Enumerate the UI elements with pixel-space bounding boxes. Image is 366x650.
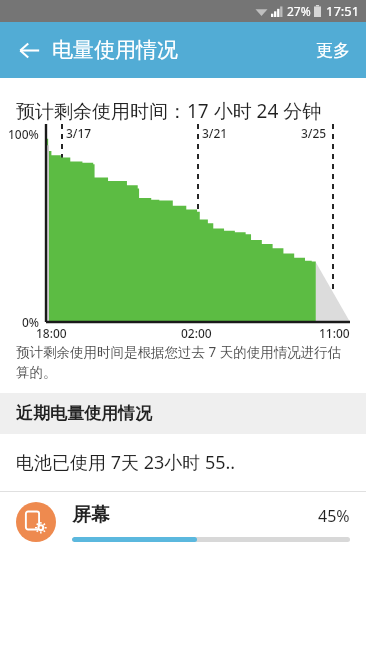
- staticText: 电池已使用 7天 23小时 55..: [16, 450, 236, 475]
- staticText: 17:51: [326, 2, 360, 20]
- button[interactable]: Back: [8, 29, 50, 71]
- staticText: 27%: [287, 3, 311, 19]
- staticText: 近期电量使用情况: [16, 403, 152, 424]
- staticText: 3/17: [66, 125, 92, 141]
- staticText: 0%: [22, 314, 40, 330]
- staticText: 100%: [8, 126, 39, 142]
- staticText: 预计剩余使用时间是根据您过去 7 天的使用情况进行估算的。: [16, 343, 348, 381]
- staticText: 45%: [318, 505, 350, 527]
- staticText: 更多: [316, 40, 350, 61]
- button[interactable]: 电池已使用 7天 23小时 55..: [0, 434, 366, 492]
- staticText: 3/25: [301, 125, 327, 141]
- staticText: 3/21: [202, 125, 228, 141]
- staticText: 预计剩余使用时间：17 小时 24 分钟: [16, 98, 322, 124]
- staticText: 02:00: [181, 325, 212, 341]
- staticText: 屏幕: [72, 503, 110, 527]
- staticText: 18:00: [36, 325, 67, 341]
- button[interactable]: 屏幕: [0, 492, 366, 542]
- staticText: 11:00: [319, 325, 350, 341]
- staticText: 电量使用情况: [52, 37, 178, 63]
- button[interactable]: 更多: [300, 28, 366, 73]
